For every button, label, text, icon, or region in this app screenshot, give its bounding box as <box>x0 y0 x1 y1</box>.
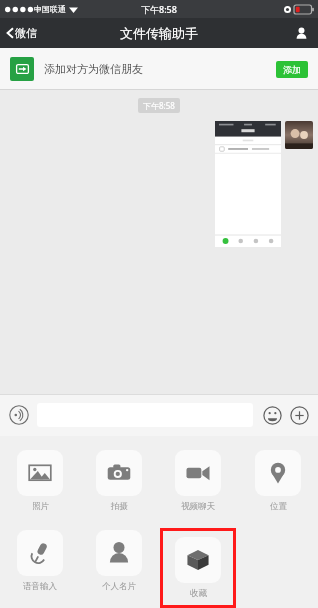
button[interactable]: 个人名片 <box>96 528 142 594</box>
button[interactable]: 视频聊天 <box>175 448 221 514</box>
button[interactable]: 拍摄 <box>96 448 142 514</box>
staticText: 视频聊天 <box>181 501 215 512</box>
staticText: 个人名片 <box>102 581 136 592</box>
button[interactable]: 添加 <box>276 61 308 78</box>
staticText: 位置 <box>270 501 287 512</box>
button[interactable]: 语音输入 <box>17 528 63 594</box>
button[interactable]: 添加对方为微信朋友 <box>0 48 318 90</box>
button[interactable]: Emoji <box>261 404 283 426</box>
staticText: 中国联通 <box>34 4 66 14</box>
button[interactable]: Contact info <box>285 20 318 47</box>
button[interactable]: More <box>288 404 310 426</box>
staticText: 下午8:58 <box>143 100 175 111</box>
button[interactable]: 收藏 <box>175 535 221 601</box>
staticText: 语音输入 <box>23 581 57 592</box>
staticText: 收藏 <box>190 588 207 599</box>
button[interactable]: 位置 <box>255 448 301 514</box>
staticText: 添加对方为微信朋友 <box>44 62 143 76</box>
button[interactable]: 微信 <box>0 21 49 45</box>
staticText: 照片 <box>32 501 49 512</box>
button[interactable] <box>285 121 313 149</box>
staticText: 添加 <box>283 64 301 75</box>
button[interactable]: 照片 <box>17 448 63 514</box>
staticText: 文件传输助手 <box>120 25 198 41</box>
button[interactable]: Voice input <box>8 404 30 426</box>
staticText: 下午8:58 <box>141 3 177 15</box>
staticText: 拍摄 <box>111 501 128 512</box>
button[interactable] <box>215 121 281 247</box>
staticText: 微信 <box>15 26 37 40</box>
